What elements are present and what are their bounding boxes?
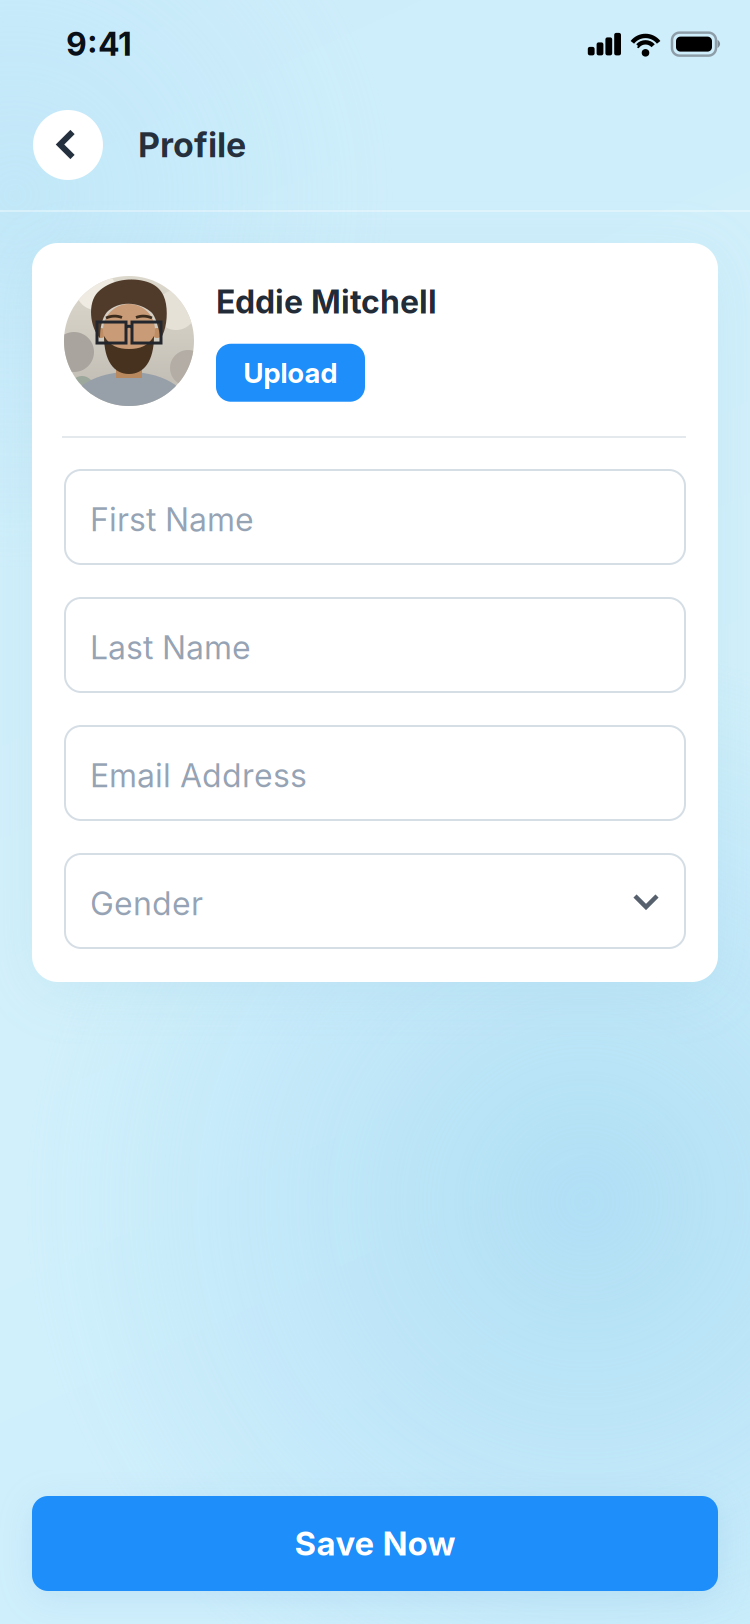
staticText: Save Now — [294, 1524, 455, 1563]
staticText: Last Name — [90, 629, 251, 666]
button[interactable]: Upload — [216, 344, 365, 402]
button[interactable]: Back — [33, 110, 103, 180]
staticText: First Name — [90, 501, 254, 538]
button[interactable]: First Name — [65, 470, 685, 564]
staticText: Email Address — [90, 757, 307, 794]
staticText: 9:41 — [66, 25, 132, 63]
staticText: Eddie Mitchell — [216, 283, 437, 321]
button[interactable]: Last Name — [65, 598, 685, 692]
button[interactable]: Save Now — [32, 1496, 718, 1591]
staticText: Upload — [243, 356, 337, 389]
staticText: Profile — [138, 125, 246, 165]
button[interactable]: Gender — [65, 854, 685, 948]
button[interactable]: Email Address — [65, 726, 685, 820]
staticText: Gender — [90, 885, 203, 922]
